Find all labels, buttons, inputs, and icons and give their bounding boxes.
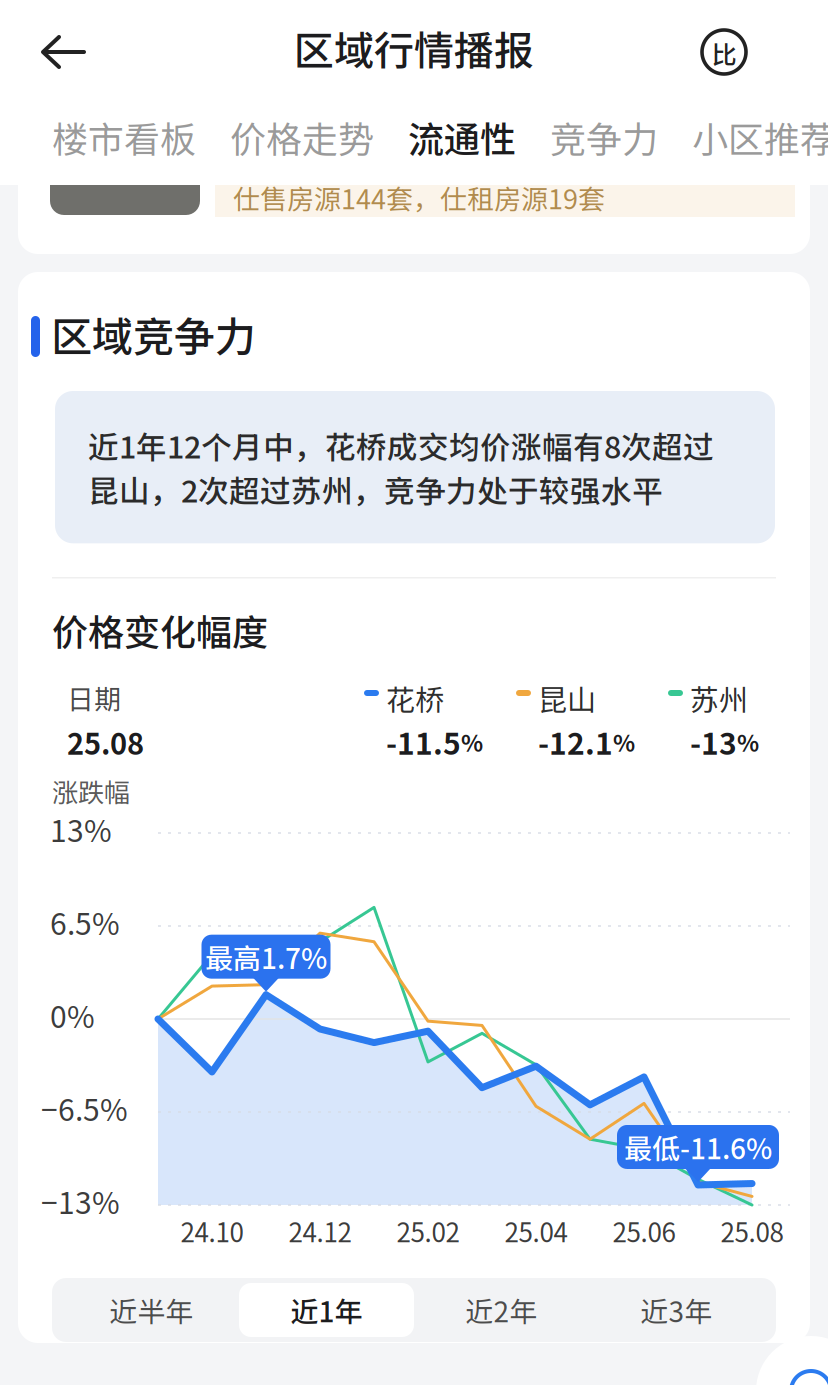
staticText: % [737,725,759,758]
staticText: 仕售房源144套，仕租房源19套 [233,178,605,217]
staticText: 近半年 [109,1290,193,1330]
button[interactable]: 近1年 [239,1283,414,1337]
staticText: 24.12 [288,1212,351,1250]
staticText: 最低-11.6% [624,1127,772,1167]
staticText: 区域竞争力 [51,304,256,364]
button[interactable]: 小区推荐 [675,100,828,174]
staticText: 苏州 [690,677,748,719]
staticText: -13 [690,720,737,763]
staticText: 区域行情播报 [294,19,534,77]
button[interactable]: 对比 [676,4,772,100]
staticText: 最高1.7% [205,936,327,977]
button[interactable]: 价格走势 [213,100,391,174]
staticText: 25.04 [504,1212,567,1250]
staticText: 25.08 [720,1212,783,1250]
staticText: 0% [50,993,95,1037]
staticText: −6.5% [41,1086,128,1130]
staticText: 6.5% [50,900,120,944]
staticText: 24.10 [180,1212,243,1250]
staticText: 竞争力 [550,111,658,163]
button[interactable]: 近2年 [414,1283,589,1337]
staticText: 涨跌幅 [52,772,130,810]
button[interactable]: 近半年 [64,1283,239,1337]
staticText: 昆山 [538,677,596,719]
staticText: 25.02 [396,1212,459,1250]
staticText: 25.06 [612,1212,675,1250]
button[interactable]: 返回 [15,5,112,99]
staticText: 小区推荐 [692,111,828,163]
button[interactable]: 客服 [756,1336,828,1385]
staticText: 25.08 [67,721,144,763]
button[interactable]: 流通性 [391,100,533,174]
staticText: % [461,725,483,758]
staticText: 近2年 [465,1290,537,1330]
button[interactable]: 近3年 [589,1283,764,1337]
staticText: 日期 [67,678,121,717]
staticText: 比 [711,35,736,71]
staticText: 近1年12个月中，花桥成交均价涨幅有8次超过昆山，2次超过苏州，竞争力处于较强水… [88,423,714,511]
staticText: 近1年 [290,1290,362,1330]
staticText: -12.1 [538,720,613,763]
staticText: 近3年 [640,1290,712,1330]
staticText: 13% [50,807,112,851]
button[interactable]: 楼市看板 [35,100,213,174]
button[interactable]: 竞争力 [533,100,675,174]
staticText: 楼市看板 [52,111,196,163]
staticText: -11.5 [386,720,461,763]
staticText: 价格走势 [230,111,374,163]
staticText: 价格变化幅度 [52,604,268,656]
staticText: 流通性 [408,111,516,163]
staticText: −13% [41,1179,120,1223]
staticText: 花桥 [386,677,444,719]
staticText: % [613,725,635,758]
